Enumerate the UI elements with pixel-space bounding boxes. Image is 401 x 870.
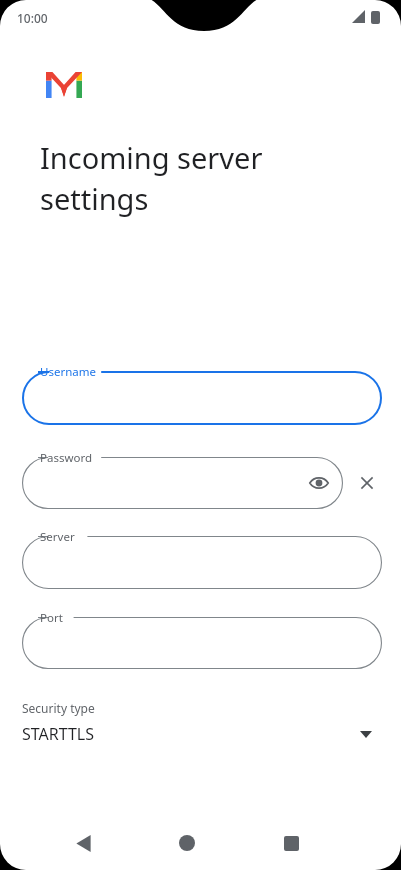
staticText: Server <box>40 529 75 545</box>
button[interactable]: Home <box>164 820 210 866</box>
staticText: 10:00 <box>17 10 48 26</box>
button[interactable]: Username <box>22 371 382 425</box>
staticText: Username <box>40 364 96 380</box>
staticText: Port <box>40 610 63 626</box>
staticText: Security type <box>22 700 95 716</box>
staticText: STARTTLS <box>22 723 95 745</box>
button[interactable]: Port <box>22 617 382 669</box>
button[interactable]: Server <box>22 536 382 589</box>
button[interactable]: Recent apps <box>268 820 314 866</box>
button[interactable]: Show password <box>305 469 333 497</box>
button[interactable]: Password <box>22 457 343 509</box>
staticText: Password <box>40 450 93 466</box>
staticText: Incoming server settings <box>40 138 370 219</box>
button[interactable]: Security type <box>8 695 393 755</box>
button[interactable]: Clear password <box>353 469 381 497</box>
button[interactable]: Back <box>60 820 106 866</box>
